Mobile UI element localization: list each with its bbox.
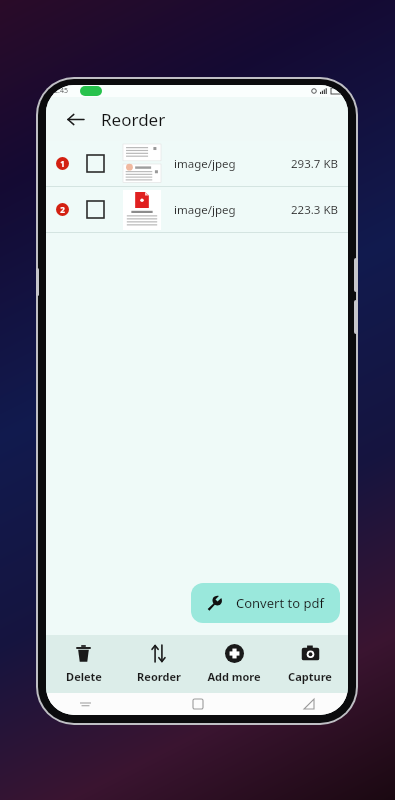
staticText: image/jpeg	[174, 202, 236, 218]
staticText: Convert to pdf	[236, 594, 324, 612]
button[interactable]: Select item 2	[87, 201, 104, 218]
staticText: Delete	[66, 669, 102, 684]
staticText: Reorder	[101, 108, 166, 131]
button[interactable]: Delete	[46, 635, 121, 693]
button[interactable]: 1	[46, 141, 348, 186]
staticText: 2:45	[54, 86, 68, 96]
button[interactable]: Select item 1	[87, 155, 104, 172]
staticText: 1	[60, 158, 65, 169]
button[interactable]: Capture	[272, 635, 348, 693]
button[interactable]: Back	[60, 104, 90, 134]
button[interactable]: 2	[46, 187, 348, 232]
staticText: 223.3 KB	[291, 202, 338, 218]
button[interactable]: Reorder	[121, 635, 196, 693]
staticText: Reorder	[137, 669, 181, 684]
staticText: image/jpeg	[174, 156, 236, 172]
staticText: Add more	[207, 669, 261, 684]
button[interactable]: Add more	[196, 635, 272, 693]
staticText: Capture	[288, 669, 332, 684]
staticText: 293.7 KB	[291, 156, 338, 172]
staticText: 2	[60, 204, 65, 215]
button[interactable]: Convert to pdf	[191, 583, 340, 623]
